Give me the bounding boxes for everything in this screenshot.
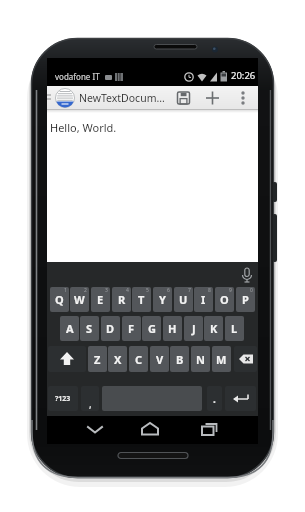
staticText: 8 (208, 287, 211, 294)
button[interactable]: Y (153, 287, 172, 312)
button[interactable]: G (142, 316, 161, 341)
staticText: X (114, 352, 122, 367)
button[interactable]: W (70, 287, 89, 312)
staticText: Y (159, 292, 166, 307)
button[interactable] (234, 346, 257, 372)
staticText: W (74, 292, 85, 307)
staticText: 3 (105, 287, 108, 294)
button[interactable]: V (150, 346, 169, 372)
button[interactable] (80, 420, 110, 440)
button[interactable] (48, 346, 86, 372)
staticText: B (176, 352, 184, 367)
button[interactable]: D (101, 316, 120, 341)
button[interactable]: T (132, 287, 151, 312)
button[interactable] (135, 420, 165, 440)
button[interactable]: U (174, 287, 193, 312)
staticText: 7 (188, 287, 191, 294)
staticText: N (196, 352, 205, 367)
staticText: 1 (64, 287, 67, 294)
staticText: ?123 (55, 394, 71, 404)
staticText: 6 (167, 287, 170, 294)
button[interactable]: ?123 (48, 386, 78, 411)
staticText: K (210, 321, 218, 336)
staticText: 0 (250, 287, 253, 294)
staticText: Z (94, 352, 101, 367)
button[interactable]: I (194, 287, 213, 312)
button[interactable]: N (191, 346, 210, 372)
button[interactable]: P (236, 287, 255, 312)
button[interactable]: S (80, 316, 99, 341)
button[interactable]: K (204, 316, 223, 341)
button[interactable]: , (81, 386, 99, 411)
button[interactable]: M (212, 346, 231, 372)
button[interactable]: Q (50, 287, 69, 312)
staticText: Hello, World. (50, 120, 117, 135)
button[interactable]: H (163, 316, 182, 341)
button[interactable]: E (91, 287, 110, 312)
staticText: G (148, 321, 156, 336)
staticText: , (89, 397, 92, 411)
button[interactable] (225, 386, 256, 411)
staticText: J (192, 321, 196, 336)
staticText: Q (55, 292, 64, 307)
button[interactable]: F (122, 316, 141, 341)
button[interactable]: NewTextDocum... (79, 91, 165, 105)
staticText: H (168, 321, 177, 336)
staticText: . (213, 392, 216, 406)
staticText: C (135, 352, 143, 367)
staticText: A (66, 321, 74, 336)
button[interactable] (194, 420, 224, 440)
staticText: F (128, 321, 135, 336)
staticText: 4 (126, 287, 129, 294)
button[interactable]: L (225, 316, 244, 341)
staticText: 2 (84, 287, 87, 294)
button[interactable]: C (129, 346, 148, 372)
staticText: 9 (229, 287, 232, 294)
staticText: U (179, 292, 188, 307)
button[interactable]: Z (88, 346, 107, 372)
staticText: I (201, 292, 206, 307)
button[interactable]: O (215, 287, 234, 312)
staticText: L (231, 321, 238, 336)
staticText: 5 (146, 287, 149, 294)
staticText: E (97, 292, 104, 307)
button[interactable]: A (60, 316, 79, 341)
button[interactable]: . (207, 386, 222, 411)
button[interactable]: X (108, 346, 127, 372)
button[interactable]: B (170, 346, 189, 372)
staticText: 20:26 (231, 69, 256, 82)
staticText: D (106, 321, 115, 336)
staticText: V (156, 352, 164, 367)
staticText: M (216, 352, 227, 367)
staticText: vodafone IT (55, 71, 100, 82)
staticText: R (118, 292, 126, 307)
button[interactable]: J (184, 316, 203, 341)
staticText: O (220, 292, 229, 307)
staticText: T (138, 292, 145, 307)
staticText: P (242, 292, 249, 307)
button[interactable]: R (112, 287, 131, 312)
staticText: S (86, 321, 93, 336)
